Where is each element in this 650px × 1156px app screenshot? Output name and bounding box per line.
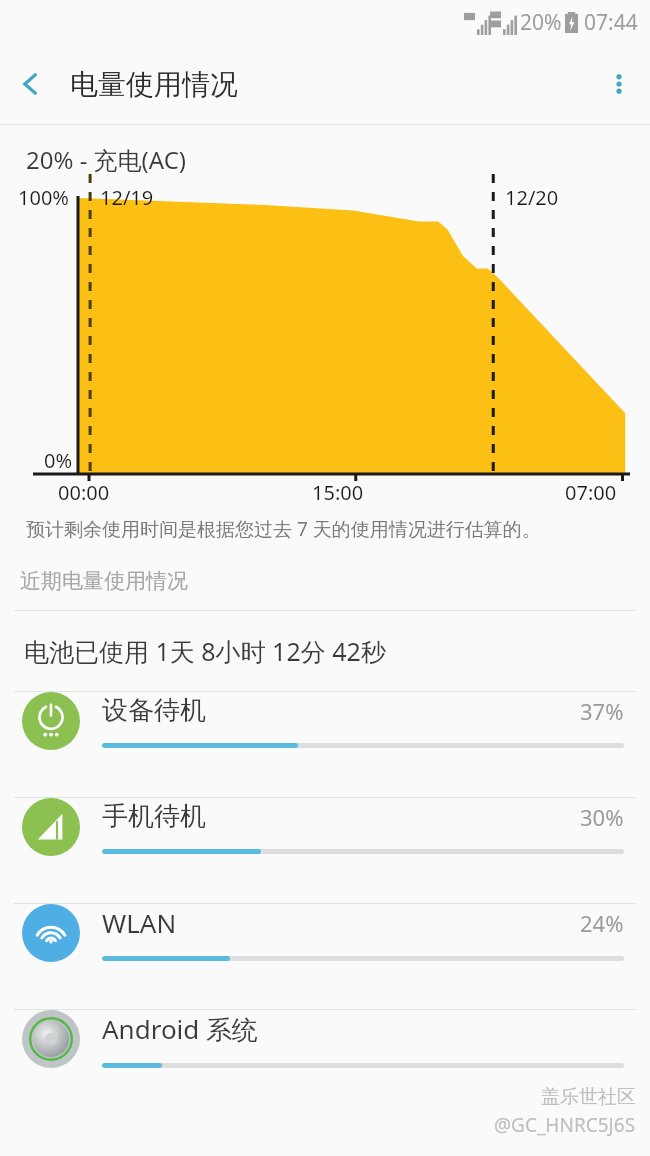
staticText: Android 系统 <box>102 1011 259 1047</box>
button[interactable]: More options <box>588 53 650 115</box>
staticText: 设备待机 <box>102 694 206 727</box>
staticText: 预计剩余使用时间是根据您过去 7 天的使用情况进行估算的。 <box>26 516 541 542</box>
button[interactable]: 设备待机 <box>0 692 650 797</box>
button[interactable]: Android 系统 <box>0 1010 650 1115</box>
staticText: 0% <box>44 447 73 474</box>
button[interactable]: Back <box>0 53 62 115</box>
staticText: 100% <box>18 184 69 211</box>
staticText: 12/19 <box>100 184 154 211</box>
staticText: 20% <box>520 8 562 37</box>
staticText: 37% <box>580 696 624 726</box>
staticText: 07:44 <box>584 8 638 37</box>
staticText: 15:00 <box>312 479 364 506</box>
staticText: 12/20 <box>505 184 559 211</box>
staticText: 24% <box>580 908 624 938</box>
button[interactable]: WLAN <box>0 904 650 1009</box>
button[interactable]: 电池已使用 1天 8小时 12分 42秒 <box>0 611 650 691</box>
staticText: @GC_HNRC5J6S <box>494 1112 636 1138</box>
staticText: 电池已使用 1天 8小时 12分 42秒 <box>24 634 386 668</box>
staticText: 电量使用情况 <box>70 67 238 102</box>
staticText: 20% - 充电(AC) <box>26 143 187 176</box>
staticText: WLAN <box>102 905 177 940</box>
staticText: 手机待机 <box>102 800 206 833</box>
staticText: 30% <box>580 802 624 832</box>
staticText: 近期电量使用情况 <box>20 568 188 594</box>
staticText: 07:00 <box>565 479 617 506</box>
button[interactable]: 手机待机 <box>0 798 650 903</box>
staticText: 盖乐世社区 <box>541 1085 636 1109</box>
staticText: 00:00 <box>58 479 110 506</box>
